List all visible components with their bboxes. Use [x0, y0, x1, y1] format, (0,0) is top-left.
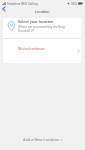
- staticText: Location: [35, 9, 50, 14]
- staticText: Add a New Location +: [23, 137, 63, 142]
- staticText: Vodafone WiFi Calling: [7, 2, 38, 6]
- staticText: Select your location: [18, 19, 54, 24]
- staticText: Where are you installing the Ring Doorbe…: [18, 25, 65, 33]
- button[interactable]: Back: [0, 5, 8, 13]
- button[interactable]: Add a New Location +: [0, 133, 85, 150]
- staticText: 94%: [71, 2, 77, 6]
- staticText: Wunschadresse: [18, 46, 45, 51]
- button[interactable]: Wunschadresse: [3, 39, 82, 63]
